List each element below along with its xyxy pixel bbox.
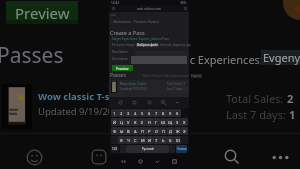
button[interactable]: Русский [126,145,169,153]
staticText: Я [120,138,123,143]
button[interactable]: Ц [118,118,125,126]
staticText: 7 [155,111,158,116]
button[interactable]: Back [155,159,160,164]
button[interactable]: Ч [125,136,132,144]
staticText: 3 [127,111,130,116]
button[interactable]: Е [139,118,146,126]
staticText: 38% [180,1,187,5]
staticText: М [141,138,145,143]
button[interactable]: More options [272,149,289,166]
staticText: 1 [289,107,296,122]
staticText: Total Sales: [226,91,287,106]
button[interactable]: Ш [160,118,167,126]
button[interactable]: И [146,136,153,144]
staticText: У [127,120,130,125]
button[interactable]: Щ [167,118,174,126]
button[interactable]: У [125,118,132,126]
button[interactable]: Toolbar action 3 [161,100,166,105]
staticText: Г [155,120,158,125]
button[interactable]: 7 [153,109,160,117]
staticText: Й [113,120,117,125]
button[interactable]: Preview [112,65,133,71]
button[interactable]: Ф [111,127,118,135]
button[interactable]: Г [153,118,160,126]
staticText: П [141,129,144,134]
button[interactable]: Search [224,149,240,165]
button[interactable]: Л [160,127,167,135]
button[interactable]: Д [167,127,174,135]
staticText: 2 [287,91,294,106]
staticText: Ш [161,120,166,125]
staticText: 5 [141,111,144,116]
button[interactable]: 8 [160,109,167,117]
button[interactable]: 123 [111,145,119,153]
button[interactable]: Stickers [91,149,107,165]
button[interactable]: Й [111,118,118,126]
staticText: 9 [169,111,172,116]
button[interactable]: В [125,127,132,135]
staticText: Б [169,138,172,143]
staticText: Р [148,129,151,134]
button[interactable]: Ы [118,127,125,135]
button[interactable]: Overview [172,159,177,164]
button[interactable]: Э [181,127,188,135]
staticText: Premium Payouts [134,20,159,24]
button[interactable]: Т [153,136,160,144]
staticText: Last 7 days: 1 [167,87,186,91]
staticText: Updated 9/19/2023 [120,87,148,91]
button[interactable]: Ь [160,136,167,144]
button[interactable]: Н [146,118,153,126]
button[interactable]: 1 [111,109,118,117]
staticText: 6 [148,111,151,116]
staticText: Create a Pass [110,29,145,36]
button[interactable]: М [139,136,146,144]
button[interactable]: Ж [174,127,181,135]
button[interactable]: Б [167,136,174,144]
button[interactable]: Toolbar action 1 [132,100,137,105]
button[interactable]: П [139,127,146,135]
staticText: В [127,129,130,134]
staticText: И [148,138,152,143]
staticText: Updated 9/19/20 [38,105,114,118]
button[interactable]: 4 [132,109,139,117]
button[interactable]: Home [138,159,143,164]
button[interactable]: 9 [167,109,174,117]
staticText: Ф [113,129,117,134]
staticText: 4 [134,111,137,116]
staticText: О [155,129,159,134]
staticText: Л [162,129,165,134]
button[interactable]: З [174,118,181,126]
staticText: < Marketplace [111,20,131,24]
button[interactable]: Emoji [26,149,43,166]
button[interactable]: 3 [125,109,132,117]
staticText: 14:42 [111,1,120,5]
staticText: 4cnerds_shaperac.jpg [160,43,191,47]
button[interactable]: Р [146,127,153,135]
staticText: Ю [176,138,180,143]
button[interactable]: Toolbar action 2 [147,100,152,105]
button[interactable]: 5 [139,109,146,117]
staticText: Н [148,120,151,125]
button[interactable]: 2 [118,109,125,117]
button[interactable]: С [132,136,139,144]
button[interactable]: Х [181,118,188,126]
button[interactable]: 0 [174,109,181,117]
button[interactable]: Ю [174,136,181,144]
button[interactable]: Preview [6,1,78,24]
button[interactable]: О [153,127,160,135]
button[interactable]: Toolbar action 0 [118,100,123,105]
staticText: Target Experience: Express_jackson Pass [112,37,169,41]
button[interactable]: Toolbar action 4 [175,100,180,105]
button[interactable]: Recents [121,159,126,164]
button[interactable]: Я [118,136,125,144]
button[interactable]: Готово [176,145,187,153]
button[interactable]: А [132,127,139,135]
staticText: 2 [120,111,123,116]
button[interactable]: 6 [146,109,153,117]
button[interactable]: К [132,118,139,126]
staticText: Выбрать файл [137,43,158,47]
